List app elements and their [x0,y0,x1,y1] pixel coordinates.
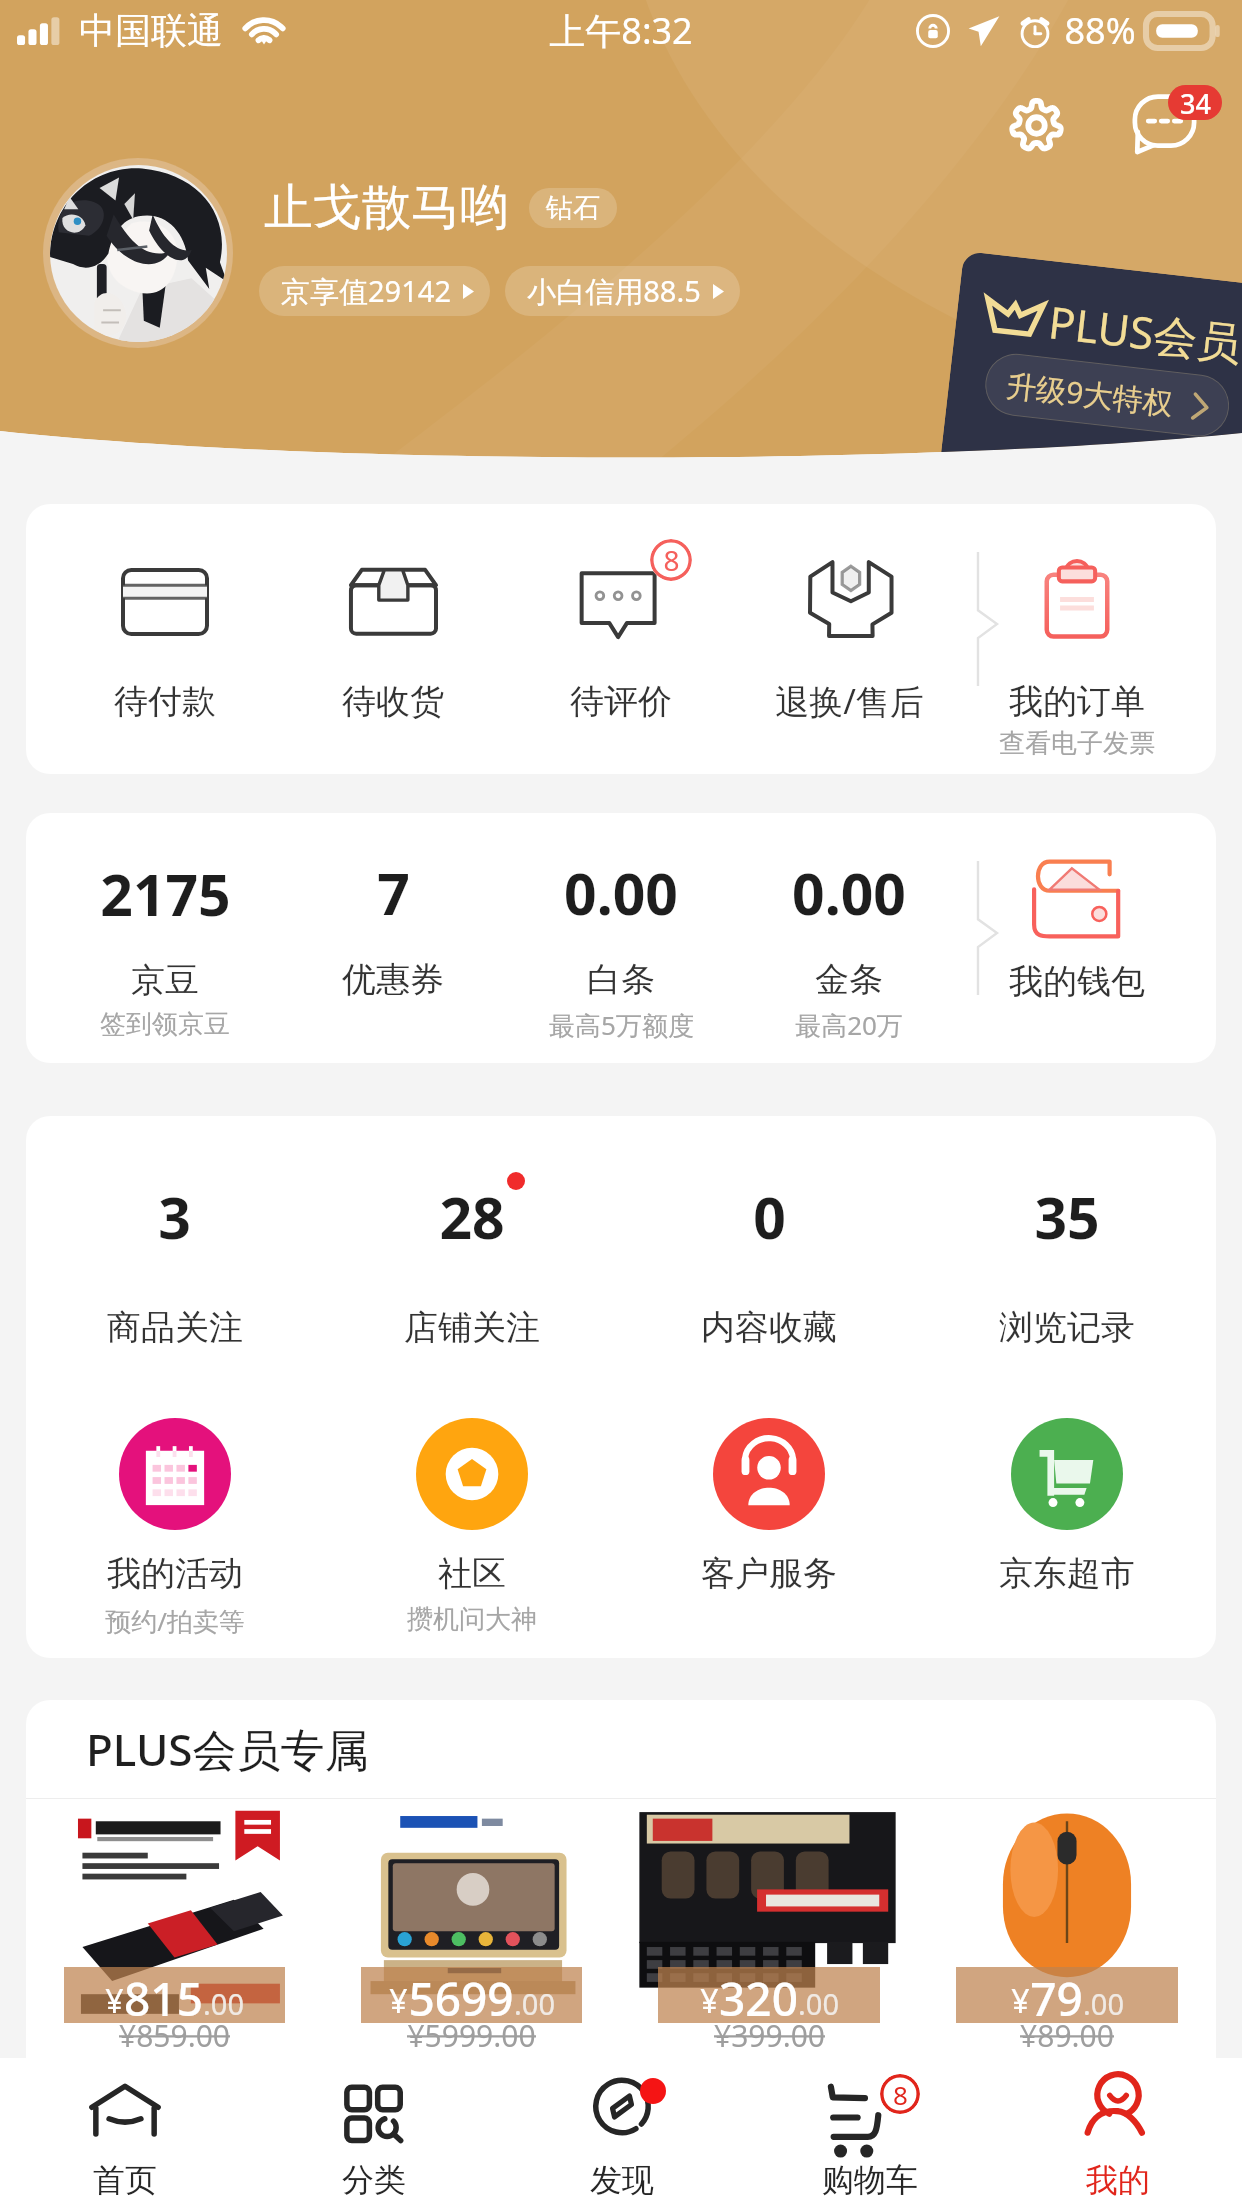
staticText: ¥89.00 [1020,2015,1114,2056]
button[interactable]: 客户服务 [620,1384,918,1658]
staticText: .00 [798,1984,839,2023]
button[interactable]: 待收货 [279,504,507,774]
button[interactable]: 小白信用88.5 [505,266,740,316]
button[interactable]: 退换/售后 [735,504,963,774]
staticText: 0.00 [564,854,678,932]
staticText: 88% [1064,6,1136,55]
staticText: 中国联通 [79,8,223,53]
staticText: 攒机问大神 [407,1603,537,1636]
button[interactable]: Messages [1126,87,1202,163]
button[interactable]: 0 [620,1116,918,1384]
staticText: 首页 [93,2160,157,2200]
staticText: ¥ [105,1979,124,2023]
staticText: .00 [1083,1984,1124,2023]
staticText: 我的订单 [1009,680,1145,723]
button[interactable]: 8 [507,504,735,774]
staticText: PLUS会员专属 [86,1719,369,1779]
button[interactable]: 京享值29142 [259,266,490,316]
staticText: 退换/售后 [775,678,924,724]
staticText: 客户服务 [701,1552,837,1595]
staticText: 社区 [438,1552,506,1595]
staticText: 3 [158,1178,191,1256]
staticText: 我的钱包 [1009,960,1145,1003]
button[interactable]: 7 [279,813,507,1063]
staticText: ¥ [389,1979,408,2023]
staticText: 店铺关注 [404,1306,540,1349]
button[interactable]: 0.00 [507,813,735,1063]
button[interactable]: 首页 [0,2058,249,2208]
staticText: PLUS会员 [1045,291,1242,373]
button[interactable]: 28 [323,1116,620,1384]
button[interactable]: Settings [998,87,1074,163]
button[interactable]: 待付款 [51,504,279,774]
staticText: ¥399.00 [714,2015,825,2056]
staticText: 7 [377,854,410,932]
button[interactable]: 3 [26,1116,323,1384]
staticText: 最高5万额度 [549,1007,694,1043]
staticText: 待收货 [342,680,444,723]
staticText: 京东超市 [999,1552,1135,1595]
staticText: 分类 [342,2160,406,2200]
staticText: 上午8:32 [549,6,693,55]
staticText: ¥ [1011,1979,1030,2023]
staticText: 止戈散马哟 [264,177,509,239]
staticText: 79 [1030,1967,1083,2023]
staticText: 京豆 [131,959,199,1002]
button[interactable]: ¥ [26,1799,323,2061]
staticText: 待付款 [114,680,216,723]
staticText: 内容收藏 [701,1306,837,1349]
staticText: 0 [753,1178,786,1256]
button[interactable]: 我的钱包 [963,813,1191,1063]
staticText: 28 [439,1178,505,1256]
staticText: 2175 [100,855,231,933]
staticText: 待评价 [570,680,672,723]
staticText: 签到领京豆 [100,1008,230,1041]
staticText: 35 [1034,1178,1100,1256]
staticText: 我的 [1086,2160,1150,2200]
button[interactable]: ¥ [918,1799,1216,2061]
staticText: 34 [1180,85,1211,120]
staticText: 815 [124,1967,203,2023]
staticText: 320 [719,1967,798,2023]
button[interactable]: 2175 [51,813,279,1063]
staticText: 钻石 [546,191,600,225]
staticText: 升级9大特权 [1004,364,1175,424]
staticText: .00 [203,1984,244,2023]
button[interactable]: 京东超市 [918,1384,1216,1658]
button[interactable]: PLUS会员 [935,251,1242,472]
button[interactable]: ¥ [323,1799,620,2061]
button[interactable]: 我的 [994,2058,1242,2208]
button[interactable]: 钻石 [546,188,600,228]
button[interactable]: Avatar [43,158,233,348]
staticText: ¥859.00 [119,2015,230,2056]
button[interactable]: 35 [918,1116,1216,1384]
staticText: 查看电子发票 [999,727,1155,760]
staticText: 0.00 [792,854,906,932]
staticText: 白条 [587,958,655,1001]
staticText: 商品关注 [107,1306,243,1349]
staticText: 金条 [815,958,883,1001]
staticText: 京享值29142 [281,271,451,311]
staticText: 浏览记录 [999,1306,1135,1349]
button[interactable]: 0.00 [735,813,963,1063]
staticText: .00 [514,1984,555,2023]
staticText: 预约/拍卖等 [105,1603,245,1639]
button[interactable]: ¥ [620,1799,918,2061]
button[interactable]: 社区 [323,1384,620,1658]
staticText: 8 [893,2077,908,2112]
button[interactable]: 发现 [498,2058,746,2208]
button[interactable]: 我的活动 [26,1384,323,1658]
staticText: 优惠券 [342,958,444,1001]
staticText: 最高20万 [795,1007,903,1043]
staticText: 购物车 [822,2160,918,2200]
staticText: ¥ [700,1979,719,2023]
button[interactable]: 我的订单 [963,504,1191,774]
staticText: 发现 [590,2160,654,2200]
button[interactable]: 8 [746,2058,994,2208]
staticText: 小白信用88.5 [527,271,701,311]
staticText: 我的活动 [107,1552,243,1595]
button[interactable]: 分类 [249,2058,498,2208]
staticText: 5699 [408,1967,514,2023]
staticText: 8 [663,541,680,579]
staticText: ¥5999.00 [407,2015,536,2056]
